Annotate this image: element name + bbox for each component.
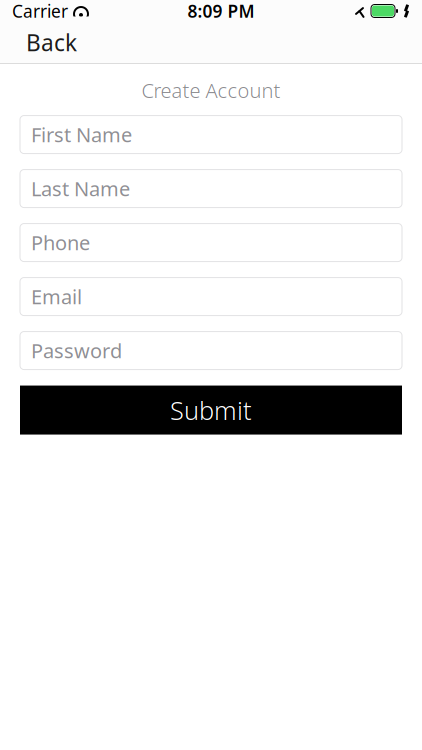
staticText: Phone bbox=[31, 229, 90, 256]
staticText: First Name bbox=[31, 121, 132, 148]
staticText: Email bbox=[31, 283, 82, 310]
staticText: Carrier bbox=[12, 0, 68, 22]
button[interactable]: Submit bbox=[20, 386, 402, 435]
staticText: 8:09 PM bbox=[187, 0, 254, 22]
staticText: Submit bbox=[170, 393, 252, 427]
staticText: Create Account bbox=[141, 77, 280, 104]
staticText: Last Name bbox=[31, 175, 130, 202]
staticText: Back bbox=[26, 27, 77, 57]
button[interactable]: Back bbox=[18, 21, 85, 63]
staticText: Password bbox=[31, 337, 122, 364]
